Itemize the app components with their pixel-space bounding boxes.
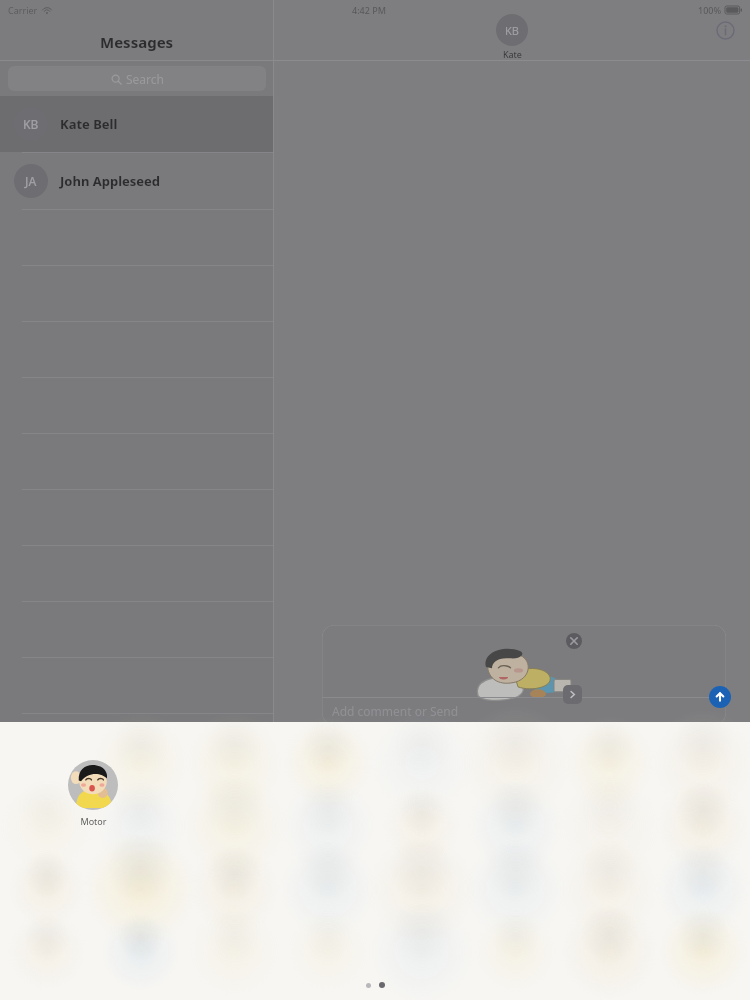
button[interactable]: Remove sticker [566, 633, 582, 649]
staticText: Messages [100, 32, 174, 52]
staticText: KB [505, 23, 519, 38]
staticText: KB [23, 116, 39, 132]
staticText: JA [25, 173, 37, 189]
button[interactable]: KB [496, 14, 528, 60]
staticText: Motor [80, 815, 107, 827]
staticText: 4:42 PM [352, 4, 386, 16]
button[interactable]: Send [709, 686, 731, 708]
staticText: Search [126, 71, 164, 87]
staticText: Carrier [8, 4, 38, 16]
staticText: Add comment or Send [332, 703, 459, 719]
button[interactable]: KB [0, 96, 274, 152]
staticText: 100% [698, 4, 722, 16]
staticText: John Appleseed [60, 172, 161, 190]
button[interactable]: Search [8, 66, 266, 91]
staticText: Kate Bell [60, 115, 118, 133]
button[interactable]: JA [0, 153, 274, 209]
button[interactable]: Add comment or Send [322, 697, 726, 725]
button[interactable]: Details [710, 15, 740, 45]
button[interactable]: Motor [68, 760, 118, 827]
staticText: Kate [503, 48, 522, 60]
button[interactable] [474, 641, 574, 703]
button[interactable]: Show apps [563, 685, 582, 704]
